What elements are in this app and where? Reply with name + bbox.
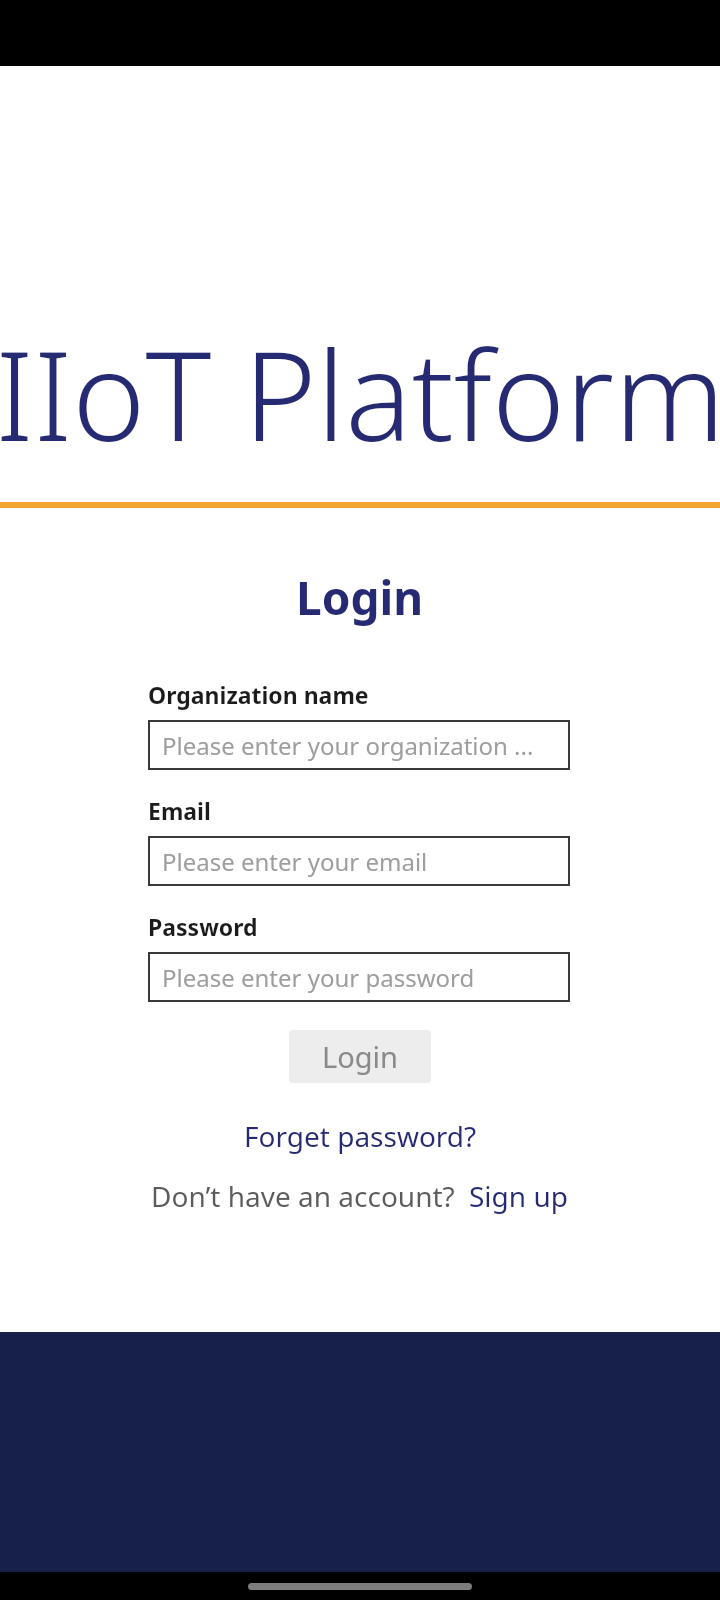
button[interactable]: Sign up — [467, 1173, 570, 1219]
staticText: Please enter your organization ... — [162, 729, 534, 762]
button[interactable]: Forget password? — [236, 1113, 485, 1159]
button[interactable]: Please enter your password — [148, 952, 570, 1002]
staticText: IIoT Platform — [0, 308, 720, 477]
staticText: Password — [148, 911, 258, 942]
staticText: Login — [296, 566, 424, 629]
button[interactable]: Login — [289, 1030, 431, 1083]
staticText: Email — [148, 795, 211, 826]
other: Home gesture bar — [248, 1583, 472, 1590]
staticText: Sign up — [469, 1177, 568, 1215]
button[interactable]: Please enter your organization ... — [148, 720, 570, 770]
staticText: Forget password? — [244, 1117, 477, 1155]
staticText: Login — [322, 1037, 398, 1076]
staticText: Please enter your email — [162, 845, 428, 878]
staticText: Don’t have an account? — [151, 1177, 455, 1215]
staticText: Please enter your password — [162, 961, 475, 994]
staticText: Organization name — [148, 679, 369, 710]
button[interactable]: Please enter your email — [148, 836, 570, 886]
